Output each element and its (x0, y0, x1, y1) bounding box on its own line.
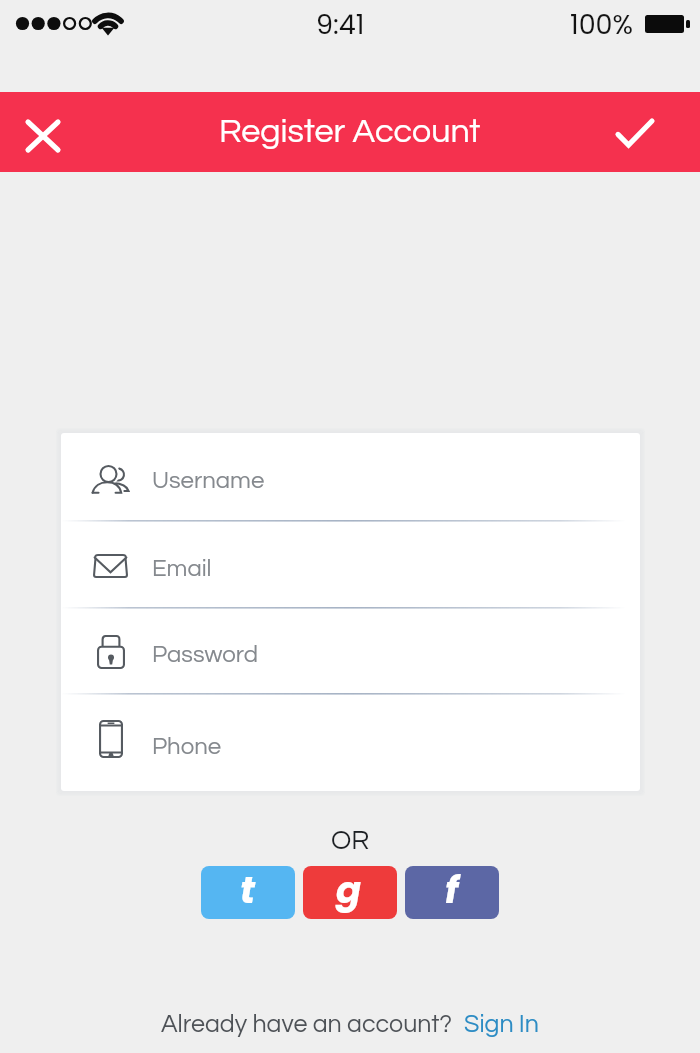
button[interactable]: Confirm (598, 92, 672, 172)
staticText: Sign In (464, 1011, 539, 1037)
staticText: Email (152, 556, 212, 581)
button[interactable]: Password (61, 608, 640, 693)
button[interactable]: Email (61, 521, 640, 607)
staticText: Already have an account? (161, 1011, 453, 1037)
staticText: Phone (152, 734, 222, 759)
staticText: OR (331, 827, 370, 855)
button[interactable]: f (405, 866, 499, 919)
staticText: 9:41 (316, 6, 365, 44)
button[interactable]: t (201, 866, 295, 919)
button[interactable]: Sign In (464, 1011, 539, 1037)
staticText: 100% (570, 6, 634, 44)
staticText: f (445, 866, 459, 916)
staticText: Password (152, 642, 258, 667)
staticText: Username (152, 468, 265, 493)
staticText: Register Account (219, 114, 481, 149)
button[interactable]: Close (8, 92, 77, 172)
staticText: g (336, 866, 362, 916)
button[interactable]: Username (61, 433, 640, 520)
button[interactable]: Phone (61, 694, 640, 791)
button[interactable]: g (303, 866, 397, 919)
staticText: t (240, 866, 256, 916)
